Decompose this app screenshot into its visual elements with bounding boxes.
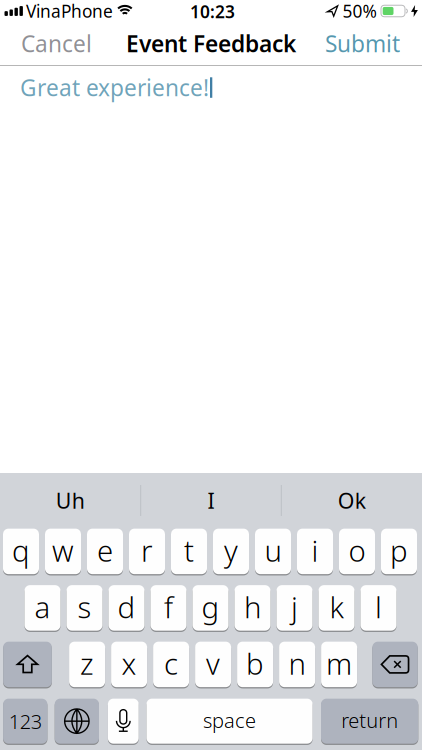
button[interactable]: z — [69, 641, 105, 688]
staticText: f — [164, 587, 173, 626]
staticText: h — [244, 587, 261, 626]
button[interactable]: Ok — [283, 479, 421, 521]
button[interactable]: Cancel — [21, 19, 92, 67]
button[interactable]: c — [153, 641, 189, 688]
button[interactable]: g — [192, 584, 228, 631]
button[interactable]: p — [381, 528, 417, 575]
staticText: VinaPhone — [26, 0, 113, 22]
button[interactable]: n — [279, 641, 315, 688]
staticText: w — [52, 531, 74, 570]
button[interactable]: y — [213, 528, 249, 575]
button[interactable]: t — [171, 528, 207, 575]
button[interactable]: I — [142, 479, 280, 521]
button[interactable]: w — [45, 528, 81, 575]
staticText: Great experience! — [20, 72, 209, 103]
button[interactable]: i — [297, 528, 333, 575]
button[interactable] — [108, 698, 139, 744]
button[interactable]: x — [111, 641, 147, 688]
staticText: j — [291, 587, 298, 626]
staticText: return — [341, 707, 398, 733]
staticText: x — [122, 644, 137, 683]
staticText: u — [264, 531, 281, 570]
button[interactable]: Uh — [1, 479, 139, 521]
staticText: y — [224, 531, 238, 570]
staticText: i — [311, 531, 318, 570]
staticText: Event Feedback — [126, 28, 296, 58]
button[interactable]: v — [195, 641, 231, 688]
staticText: e — [97, 531, 113, 570]
button[interactable]: m — [321, 641, 357, 688]
staticText: p — [390, 531, 408, 570]
button[interactable]: f — [150, 584, 186, 631]
staticText: s — [77, 587, 91, 626]
staticText: Cancel — [21, 28, 92, 58]
button[interactable]: a — [24, 584, 60, 631]
staticText: z — [80, 644, 94, 683]
button[interactable]: return — [321, 698, 418, 744]
staticText: k — [329, 587, 343, 626]
button[interactable]: h — [234, 584, 270, 631]
staticText: 10:23 — [190, 0, 235, 23]
staticText: t — [184, 531, 194, 570]
button[interactable]: s — [66, 584, 102, 631]
button[interactable]: d — [108, 584, 144, 631]
staticText: a — [34, 587, 50, 626]
button[interactable]: j — [276, 584, 312, 631]
staticText: l — [375, 587, 382, 626]
button[interactable]: 123 — [3, 698, 47, 744]
staticText: Ok — [338, 486, 366, 515]
staticText: c — [164, 644, 178, 683]
button[interactable]: o — [339, 528, 375, 575]
staticText: r — [141, 531, 153, 570]
staticText: Uh — [56, 486, 85, 515]
staticText: 50% — [342, 0, 376, 22]
staticText: space — [203, 707, 256, 733]
staticText: b — [246, 644, 264, 683]
staticText: v — [206, 644, 220, 683]
staticText: 123 — [9, 708, 42, 734]
button[interactable] — [372, 641, 418, 688]
button[interactable]: r — [129, 528, 165, 575]
button[interactable]: e — [87, 528, 123, 575]
staticText: I — [207, 486, 214, 515]
button[interactable]: l — [360, 584, 396, 631]
button[interactable]: Submit — [325, 19, 400, 67]
staticText: m — [326, 644, 352, 683]
staticText: o — [348, 531, 365, 570]
staticText: d — [117, 587, 135, 626]
button[interactable]: u — [255, 528, 291, 575]
staticText: Submit — [325, 28, 400, 58]
button[interactable]: k — [318, 584, 354, 631]
button[interactable] — [55, 698, 99, 744]
staticText: g — [201, 587, 219, 626]
button[interactable]: b — [237, 641, 273, 688]
button[interactable]: space — [146, 698, 313, 744]
button[interactable] — [3, 641, 52, 688]
staticText: q — [12, 531, 30, 570]
staticText: n — [289, 644, 306, 683]
button[interactable]: q — [3, 528, 39, 575]
